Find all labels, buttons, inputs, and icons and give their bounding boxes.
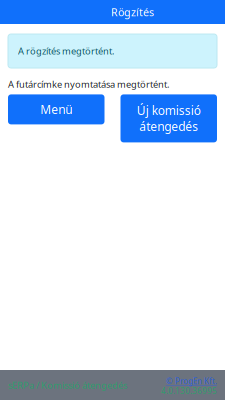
staticText: 4.0.130.36995 [161,385,217,396]
button[interactable]: Új komissió [120,94,217,142]
staticText: sERPa / Komissió átengedés [8,379,127,391]
staticText: A futárcímke nyomtatása megtörtént. [8,78,170,90]
staticText: © ProgEn Kft. [166,376,217,386]
staticText: A rögzítés megtörtént. [18,45,115,57]
staticText: átengedés [139,118,198,134]
staticText: Rögzítés [111,5,154,19]
staticText: Új komissió [137,102,201,118]
button[interactable]: Menü [8,94,104,124]
button[interactable]: © ProgEn Kft. [166,376,217,386]
staticText: Menü [40,101,72,117]
